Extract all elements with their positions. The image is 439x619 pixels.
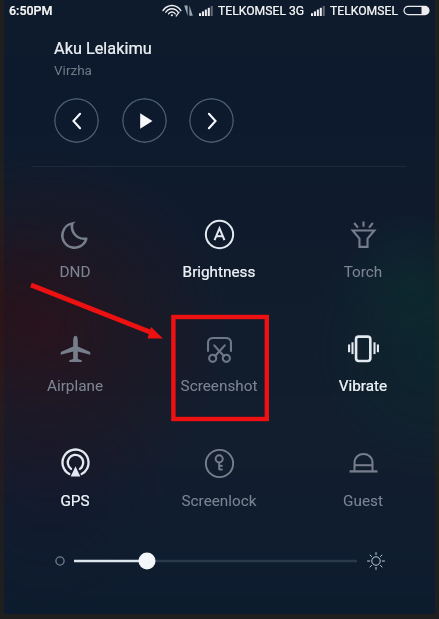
- button[interactable]: Next: [189, 98, 234, 143]
- staticText: Torch: [297, 263, 429, 281]
- staticText: GPS: [9, 492, 141, 510]
- staticText: 6:50PM: [9, 3, 53, 18]
- button[interactable]: Brightness slider: [46, 544, 393, 578]
- staticText: Vibrate: [297, 377, 429, 395]
- staticText: Guest: [297, 492, 429, 510]
- button[interactable]: GPS: [9, 448, 141, 510]
- staticText: TELKOMSEL: [330, 4, 398, 18]
- button[interactable]: Play: [122, 98, 167, 143]
- staticText: Brightness: [153, 263, 285, 281]
- staticText: Virzha: [54, 62, 92, 78]
- button[interactable]: Vibrate: [297, 333, 429, 395]
- staticText: TELKOMSEL 3G: [218, 4, 305, 18]
- staticText: DND: [9, 263, 141, 281]
- button[interactable]: Guest: [297, 448, 429, 510]
- staticText: Screenshot: [153, 377, 285, 395]
- staticText: Aku Lelakimu: [54, 39, 152, 58]
- button[interactable]: Torch: [297, 219, 429, 281]
- button[interactable]: DND: [9, 219, 141, 281]
- staticText: Airplane: [9, 377, 141, 395]
- button[interactable]: Screenshot: [153, 333, 285, 395]
- button[interactable]: Previous: [54, 98, 99, 143]
- staticText: Screenlock: [153, 492, 285, 510]
- button[interactable]: Brightness: [153, 219, 285, 281]
- button[interactable]: Airplane: [9, 333, 141, 395]
- button[interactable]: Screenlock: [153, 448, 285, 510]
